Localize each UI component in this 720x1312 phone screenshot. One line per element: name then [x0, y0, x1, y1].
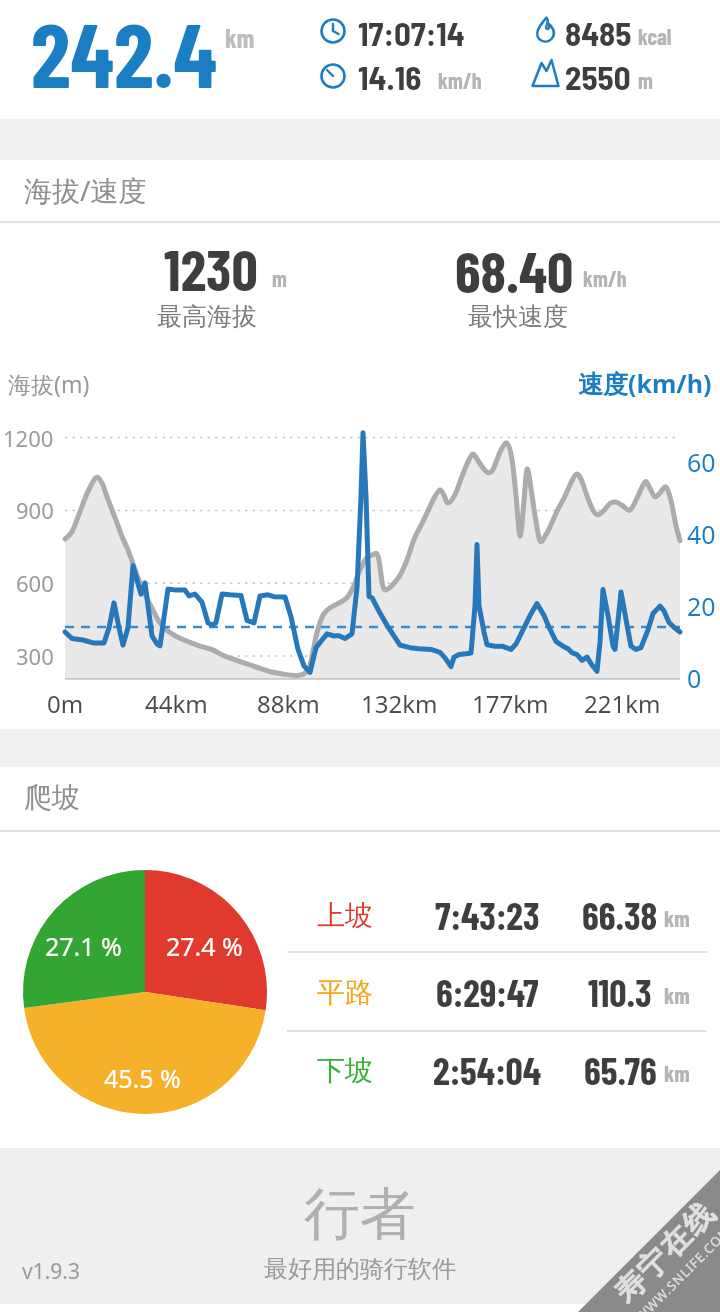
staticText: 45.5 %: [104, 1061, 181, 1095]
staticText: m: [272, 265, 287, 291]
button[interactable]: [0, 767, 720, 830]
staticText: 900: [16, 495, 54, 525]
staticText: 0: [687, 661, 702, 695]
staticText: 27.1 %: [45, 929, 122, 963]
staticText: km/h: [583, 265, 627, 291]
staticText: 2550: [565, 57, 631, 97]
staticText: km/h: [438, 67, 482, 93]
staticText: 0m: [47, 687, 84, 720]
staticText: km: [664, 904, 690, 932]
staticText: 132km: [361, 687, 438, 720]
staticText: 242.4: [31, 0, 218, 106]
staticText: 1200: [3, 423, 54, 453]
staticText: km: [664, 981, 690, 1009]
staticText: 68.40: [455, 235, 574, 305]
staticText: 600: [16, 568, 54, 598]
staticText: km: [225, 22, 255, 53]
staticText: 14.16: [358, 57, 422, 97]
staticText: 上坡: [317, 898, 373, 933]
staticText: 最快速度: [468, 301, 568, 332]
staticText: 海拔(m): [8, 368, 90, 399]
staticText: 1230: [164, 233, 258, 303]
staticText: 8485: [565, 13, 632, 53]
staticText: 行者: [304, 1179, 416, 1250]
staticText: km: [664, 1059, 690, 1087]
staticText: 88km: [257, 687, 320, 720]
button[interactable]: [0, 160, 720, 221]
button[interactable]: 寿宁在线: [523, 1113, 720, 1312]
staticText: 110.3: [588, 969, 652, 1015]
staticText: 速度(km/h): [578, 366, 712, 400]
staticText: 6:29:47: [436, 969, 539, 1015]
staticText: 300: [16, 641, 54, 671]
staticText: 60: [687, 445, 716, 479]
staticText: 最好用的骑行软件: [264, 1254, 456, 1284]
staticText: 7:43:23: [435, 892, 540, 938]
staticText: 海拔/速度: [24, 171, 147, 209]
staticText: 17:07:14: [358, 13, 465, 53]
staticText: 66.38: [582, 892, 658, 938]
staticText: 2:54:04: [433, 1047, 542, 1093]
staticText: 下坡: [317, 1053, 373, 1088]
staticText: 爬坡: [24, 780, 80, 815]
staticText: kcal: [638, 23, 672, 49]
staticText: 20: [687, 589, 716, 623]
staticText: v1.9.3: [22, 1257, 80, 1286]
staticText: 寿宁在线: [606, 1194, 720, 1312]
staticText: 40: [687, 517, 716, 551]
staticText: 27.4 %: [166, 929, 243, 963]
staticText: 221km: [584, 687, 661, 720]
staticText: WWW.SNLIFE.COM: [632, 1221, 720, 1312]
staticText: 平路: [317, 975, 373, 1010]
staticText: 177km: [472, 687, 549, 720]
staticText: 最高海拔: [157, 301, 257, 332]
staticText: 44km: [145, 687, 208, 720]
staticText: 65.76: [584, 1047, 657, 1093]
staticText: m: [638, 67, 653, 93]
